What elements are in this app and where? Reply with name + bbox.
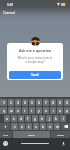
staticText: 9:41 — [7, 3, 14, 7]
button[interactable]: Send — [9, 71, 61, 79]
button[interactable]: Shift — [0, 123, 10, 130]
staticText: t — [31, 109, 33, 113]
staticText: 1 — [3, 101, 5, 105]
staticText: w — [10, 109, 13, 113]
button[interactable]: r — [22, 107, 28, 114]
button[interactable]: 6 — [36, 99, 42, 106]
button[interactable]: Cancel — [2, 9, 16, 16]
staticText: k — [55, 117, 57, 121]
button[interactable]: Emoji — [2, 140, 9, 147]
button[interactable]: m — [54, 123, 60, 130]
button[interactable]: g — [32, 115, 38, 122]
button[interactable]: y — [36, 107, 42, 114]
button[interactable]: 1 — [0, 99, 7, 106]
staticText: a — [6, 117, 8, 121]
staticText: y — [38, 109, 40, 113]
staticText: z — [14, 125, 16, 129]
staticText: 2 — [10, 101, 12, 105]
button[interactable]: v — [33, 123, 39, 130]
staticText: b — [42, 125, 44, 129]
staticText: return — [57, 133, 65, 136]
staticText: 6 — [38, 101, 40, 105]
staticText: Cancel — [3, 10, 15, 15]
button[interactable]: 2 — [8, 99, 14, 106]
staticText: 9 — [59, 101, 61, 105]
staticText: q — [3, 109, 5, 113]
staticText: 4 — [24, 101, 26, 105]
button[interactable]: k — [53, 115, 59, 122]
staticText: i — [53, 109, 54, 113]
staticText: u — [45, 109, 47, 113]
staticText: n — [49, 125, 51, 129]
button[interactable]: 0 — [64, 99, 70, 106]
button[interactable]: space — [13, 131, 50, 138]
button[interactable]: x — [19, 123, 25, 130]
staticText: g — [34, 117, 36, 121]
button[interactable]: 4 — [22, 99, 28, 106]
button[interactable]: a — [4, 115, 10, 122]
button[interactable]: f — [25, 115, 31, 122]
staticText: 7 — [45, 101, 47, 105]
staticText: d — [20, 117, 22, 121]
button[interactable]: 7 — [43, 99, 49, 106]
button[interactable]: b — [40, 123, 46, 130]
staticText: Send — [31, 73, 39, 77]
staticText: s — [13, 117, 15, 121]
button[interactable]: Backspace — [61, 123, 70, 130]
button[interactable]: 8 — [50, 99, 56, 106]
button[interactable]: j — [46, 115, 52, 122]
staticText: v — [35, 125, 37, 129]
button[interactable]: c — [26, 123, 32, 130]
staticText: 0 — [66, 101, 68, 105]
button[interactable]: 3 — [15, 99, 21, 106]
staticText: Ask me a question — [19, 48, 52, 53]
button[interactable]: 5 — [29, 99, 35, 106]
button[interactable]: l — [60, 115, 66, 122]
staticText: o — [59, 109, 61, 113]
button[interactable]: u — [43, 107, 49, 114]
button[interactable]: Voice input — [60, 140, 67, 147]
staticText: p — [66, 109, 68, 113]
staticText: l — [63, 117, 64, 121]
button[interactable]: d — [18, 115, 24, 122]
staticText: r — [24, 109, 26, 113]
button[interactable]: h — [39, 115, 45, 122]
staticText: 8 — [52, 101, 54, 105]
button[interactable]: ?123 — [0, 131, 12, 138]
button[interactable]: w — [8, 107, 14, 114]
staticText: 5 — [31, 101, 33, 105]
staticText: What's your actual ask in a simple way? — [17, 56, 53, 64]
button[interactable]: p — [64, 107, 70, 114]
staticText: c — [28, 125, 30, 129]
staticText: j — [49, 117, 50, 121]
button[interactable]: i — [50, 107, 56, 114]
staticText: 3 — [17, 101, 19, 105]
staticText: e — [17, 109, 19, 113]
button[interactable]: e — [15, 107, 21, 114]
button[interactable]: return — [51, 131, 70, 138]
button[interactable]: q — [0, 107, 7, 114]
button[interactable]: t — [29, 107, 35, 114]
staticText: space — [28, 133, 35, 136]
button[interactable]: 9 — [57, 99, 63, 106]
staticText: m — [56, 125, 59, 129]
button[interactable]: o — [57, 107, 63, 114]
button[interactable]: z — [11, 123, 18, 130]
staticText: x — [21, 125, 23, 129]
staticText: f — [27, 117, 29, 121]
staticText: h — [41, 117, 43, 121]
button[interactable]: s — [11, 115, 17, 122]
staticText: ?123 — [3, 133, 9, 136]
button[interactable]: n — [47, 123, 53, 130]
